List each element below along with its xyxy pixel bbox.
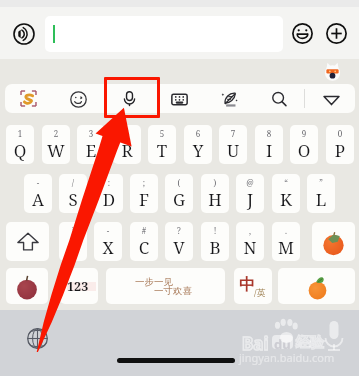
button[interactable]: 1 [6,125,34,164]
staticText: @ [236,177,264,188]
staticText: ( [165,177,193,188]
button[interactable]: Emoticons [55,84,103,113]
staticText: Bai [242,332,269,355]
staticText: A [24,188,52,211]
button[interactable]: 3 [77,125,105,164]
staticText: 经验 [296,334,324,352]
staticText: T [148,139,176,162]
staticText: P [326,139,354,162]
staticText: 7 [219,128,247,139]
staticText: G [165,188,193,211]
button[interactable]: Sogou input [4,84,52,113]
button[interactable]: . [272,222,300,261]
button[interactable]: ” [307,174,335,213]
staticText: L [307,188,335,211]
staticText: W [42,139,70,162]
staticText: R [113,139,141,162]
staticText: 5 [148,128,176,139]
staticText: 中 [239,275,255,295]
staticText: Z [59,236,87,259]
button[interactable]: : [95,174,123,213]
staticText: U [219,139,247,162]
staticText: H [201,188,229,211]
staticText: 2 [42,128,70,139]
button[interactable]: / [59,174,87,213]
button[interactable]: 9 [290,125,318,164]
staticText: Y [184,139,212,162]
staticText: ; [130,177,158,188]
staticText: . [272,225,300,236]
staticText: 0 [326,128,354,139]
button[interactable]: Space [106,268,225,304]
button[interactable]: ’ [59,222,87,261]
button[interactable]: ? [165,222,193,261]
button[interactable]: ! [201,222,229,261]
staticText: M [272,236,300,259]
button[interactable]: 6 [184,125,212,164]
button[interactable]: 8 [255,125,283,164]
button[interactable]: 5 [148,125,176,164]
button[interactable]: Assistant [324,62,341,81]
staticText: 3 [77,128,105,139]
staticText: /英 [254,286,266,298]
button[interactable]: 2 [42,125,70,164]
staticText: 一步一见 [135,276,173,288]
button[interactable]: # [130,222,158,261]
staticText: O [290,139,318,162]
staticText: / [59,177,87,188]
staticText: J [236,188,264,211]
staticText: jingyan.baidu.com [239,350,335,365]
button[interactable]: - [24,174,52,213]
button[interactable]: 0 [326,125,354,164]
button[interactable]: Hide keyboard [307,84,355,113]
staticText: E [77,139,105,162]
button[interactable]: “ [272,174,300,213]
staticText: V [165,236,193,259]
staticText: F [130,188,158,211]
button[interactable]: Emoji keyboard [6,268,48,304]
staticText: S [59,188,87,211]
staticText: # [130,225,158,236]
staticText: 6 [184,128,212,139]
button[interactable]: Search [256,84,304,113]
staticText: D [95,188,123,211]
staticText: I [255,139,283,162]
button[interactable]: More [326,23,347,44]
staticText: “ [272,177,300,188]
button[interactable]: 中 [234,268,272,304]
staticText: du [274,335,291,349]
button[interactable]: - [94,222,122,261]
button[interactable]: Keyboard layout [156,84,204,113]
button[interactable] [45,16,283,52]
button[interactable]: 123 [60,268,98,304]
staticText: K [272,188,300,211]
button[interactable]: Handwriting [205,84,253,113]
button[interactable]: 7 [219,125,247,164]
button[interactable]: Switch language [27,328,48,349]
button[interactable]: Emoji [292,23,313,44]
staticText: N [236,236,264,259]
button[interactable]: ; [130,174,158,213]
button[interactable]: @ [236,174,264,213]
button[interactable]: 4 [113,125,141,164]
staticText: - [94,225,122,236]
button[interactable]: Enter [278,268,355,304]
button[interactable]: ) [201,174,229,213]
staticText: ” [307,177,335,188]
staticText: B [201,236,229,259]
button[interactable]: Read aloud [13,23,35,45]
button[interactable]: Shift [6,222,49,261]
button[interactable]: , [236,222,264,261]
button[interactable]: ( [165,174,193,213]
staticText: Q [6,139,34,162]
staticText: 一寸欢喜 [154,285,192,297]
button[interactable]: Delete [312,222,355,261]
staticText: ) [201,177,229,188]
staticText: ? [165,225,193,236]
staticText: 123 [67,278,89,295]
staticText: C [130,236,158,259]
staticText: 1 [6,128,34,139]
staticText: X [94,236,122,259]
button[interactable]: Voice input [105,84,153,113]
staticText: : [95,177,123,188]
